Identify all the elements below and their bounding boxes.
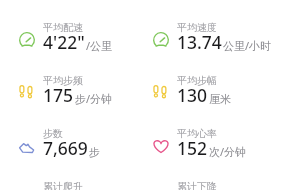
button[interactable]: 平均步幅 bbox=[152, 73, 284, 113]
staticText: 4'22" bbox=[43, 30, 85, 54]
staticText: 175 bbox=[43, 83, 74, 107]
button[interactable]: 累计下降 bbox=[152, 179, 284, 190]
button[interactable]: 平均速度 bbox=[152, 20, 284, 60]
button[interactable]: 累计爬升 bbox=[18, 179, 150, 190]
staticText: 步数 bbox=[43, 127, 63, 140]
staticText: 累计下降 bbox=[177, 180, 217, 190]
staticText: 厘米 bbox=[209, 92, 231, 106]
staticText: 步 bbox=[89, 145, 100, 159]
staticText: 步/分钟 bbox=[75, 91, 113, 106]
staticText: 公里/小时 bbox=[223, 38, 272, 53]
button[interactable]: 步数 bbox=[18, 126, 150, 166]
button[interactable]: 平均心率 bbox=[152, 126, 284, 166]
staticText: 12 bbox=[43, 189, 64, 190]
button[interactable]: 平均配速 bbox=[18, 20, 150, 60]
staticText: 累计爬升 bbox=[43, 180, 83, 190]
staticText: 13.74 bbox=[177, 30, 222, 54]
staticText: 152 bbox=[177, 136, 208, 160]
staticText: 平均配速 bbox=[43, 21, 83, 34]
staticText: 平均步幅 bbox=[177, 74, 217, 87]
staticText: 平均步频 bbox=[43, 74, 83, 87]
staticText: 平均心率 bbox=[177, 127, 217, 140]
button[interactable]: 平均步频 bbox=[18, 73, 150, 113]
staticText: 130 bbox=[177, 83, 208, 107]
staticText: /公里 bbox=[86, 38, 113, 53]
staticText: 7,669 bbox=[43, 136, 88, 160]
staticText: 15 bbox=[177, 189, 198, 190]
staticText: 平均速度 bbox=[177, 21, 217, 34]
staticText: 次/分钟 bbox=[209, 144, 247, 159]
